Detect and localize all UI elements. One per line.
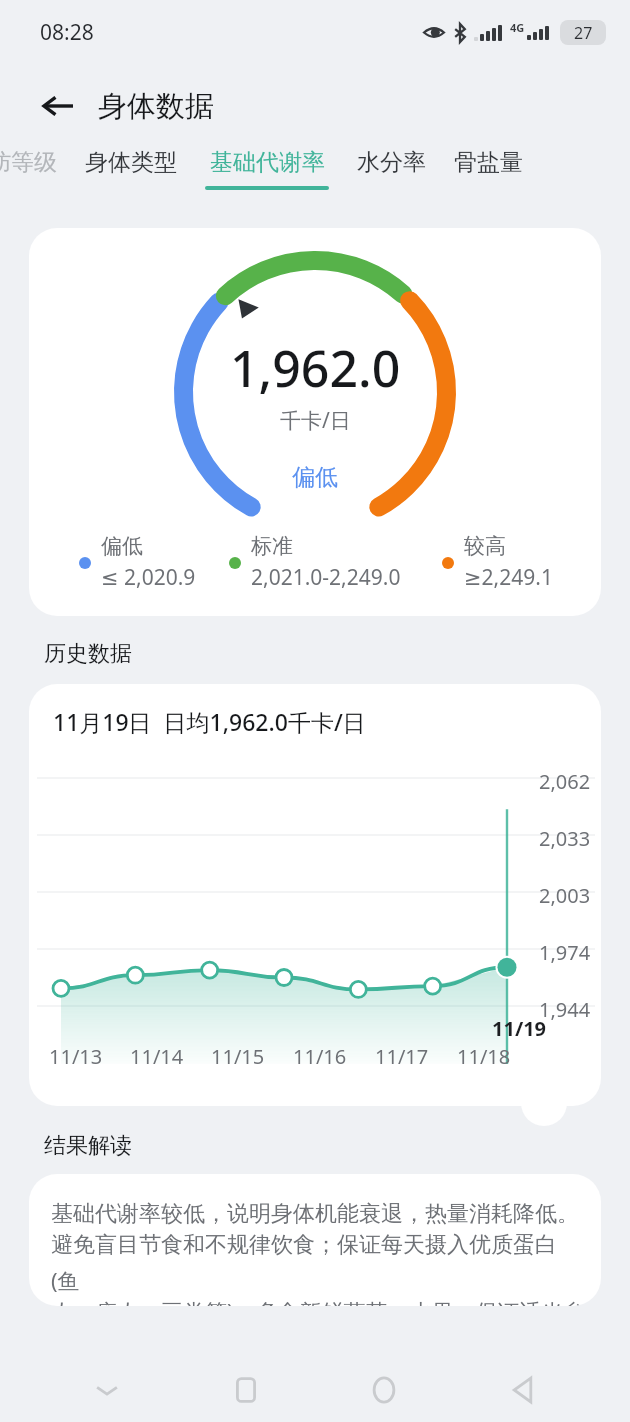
staticText: 骨盐量 (454, 148, 523, 177)
staticText: 较高 (464, 533, 506, 559)
button[interactable]: Home (353, 1359, 415, 1421)
staticText: ≤ 2,020.9 (101, 563, 196, 592)
staticText: 11/13 (49, 1043, 103, 1070)
staticText: 4G (510, 20, 525, 35)
staticText: 结果解读 (44, 1132, 132, 1160)
staticText: ≥2,249.1 (464, 563, 553, 592)
staticText: 2,021.0-2,249.0 (251, 563, 401, 592)
button[interactable]: Scroll indicator (521, 1080, 567, 1126)
staticText: 避免盲目节食和不规律饮食；保证每天摄入优质蛋白 (鱼 (51, 1228, 587, 1296)
staticText: 11/19 (492, 1015, 547, 1042)
staticText: 肪等级 (0, 148, 57, 177)
staticText: 千卡/日 (280, 406, 351, 435)
staticText: 11月19日 日均1,962.0千卡/日 (53, 706, 366, 737)
button[interactable]: Back (492, 1359, 554, 1421)
staticText: 11/16 (293, 1043, 347, 1070)
button[interactable]: 身体类型 (71, 148, 191, 186)
button[interactable]: 肪等级 (0, 148, 71, 186)
staticText: 身体类型 (85, 148, 177, 177)
staticText: 肉、瘦肉、豆类等)，多食新鲜蔬菜、水果；保证适当参加运 (51, 1296, 587, 1306)
staticText: 11/17 (375, 1043, 429, 1070)
staticText: 08:28 (40, 18, 94, 47)
staticText: 2,062 (539, 768, 591, 795)
button[interactable]: Back (34, 82, 82, 130)
staticText: 偏低 (292, 463, 338, 492)
staticText: 11/18 (457, 1043, 511, 1070)
button[interactable]: 水分率 (343, 148, 440, 186)
staticText: 基础代谢率较低，说明身体机能衰退，热量消耗降低。 (51, 1200, 579, 1228)
staticText: 基础代谢率 (210, 148, 325, 177)
staticText: 2,033 (539, 825, 591, 852)
staticText: 历史数据 (44, 640, 132, 668)
staticText: 标准 (251, 533, 293, 559)
staticText: 偏低 (101, 533, 143, 559)
staticText: 水分率 (357, 148, 426, 177)
staticText: 11/15 (211, 1043, 265, 1070)
button[interactable]: 骨盐量 (440, 148, 537, 186)
staticText: 2,003 (539, 882, 591, 909)
staticText: 1,962.0 (230, 334, 401, 402)
staticText: 1,944 (539, 996, 591, 1023)
button[interactable]: 基础代谢率 (191, 148, 343, 190)
button[interactable]: Hide (76, 1359, 138, 1421)
staticText: 11/14 (130, 1043, 184, 1070)
staticText: 27 (574, 22, 593, 44)
button[interactable]: Recent apps (215, 1359, 277, 1421)
staticText: 身体数据 (98, 88, 214, 125)
staticText: 1,974 (539, 939, 591, 966)
